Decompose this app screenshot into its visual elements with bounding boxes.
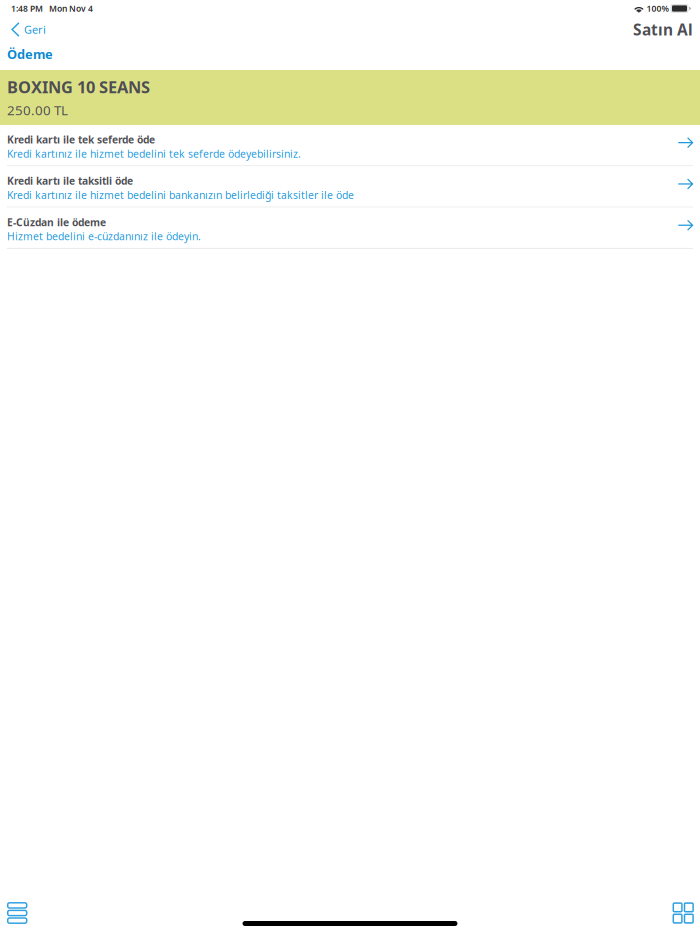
- staticText: Geri: [24, 22, 46, 37]
- button[interactable]: E-Cüzdan ile ödeme: [0, 208, 700, 249]
- button[interactable]: Kredi kartı ile tek seferde öde: [0, 125, 700, 166]
- staticText: 1:48 PM: [11, 3, 43, 14]
- staticText: Ödeme: [7, 45, 53, 63]
- button[interactable]: List view: [0, 897, 34, 929]
- staticText: Kredi kartınız ile hizmet bedelini banka…: [7, 188, 354, 202]
- staticText: Mon Nov 4: [43, 3, 93, 14]
- staticText: 250.00 TL: [7, 101, 68, 119]
- staticText: Kredi kartınız ile hizmet bedelini tek s…: [7, 147, 301, 161]
- staticText: Hizmet bedelini e-cüzdanınız ile ödeyin.: [7, 229, 201, 243]
- staticText: Satın Al: [633, 19, 693, 40]
- button[interactable]: Geri: [10, 20, 47, 39]
- staticText: E-Cüzdan ile ödeme: [7, 215, 106, 229]
- staticText: Kredi kartı ile tek seferde öde: [7, 133, 155, 147]
- button[interactable]: Kredi kartı ile taksitli öde: [0, 166, 700, 208]
- staticText: Kredi kartı ile taksitli öde: [7, 174, 133, 188]
- staticText: 100%: [644, 3, 670, 14]
- button[interactable]: Grid view: [666, 897, 700, 929]
- staticText: BOXING 10 SEANS: [7, 76, 150, 98]
